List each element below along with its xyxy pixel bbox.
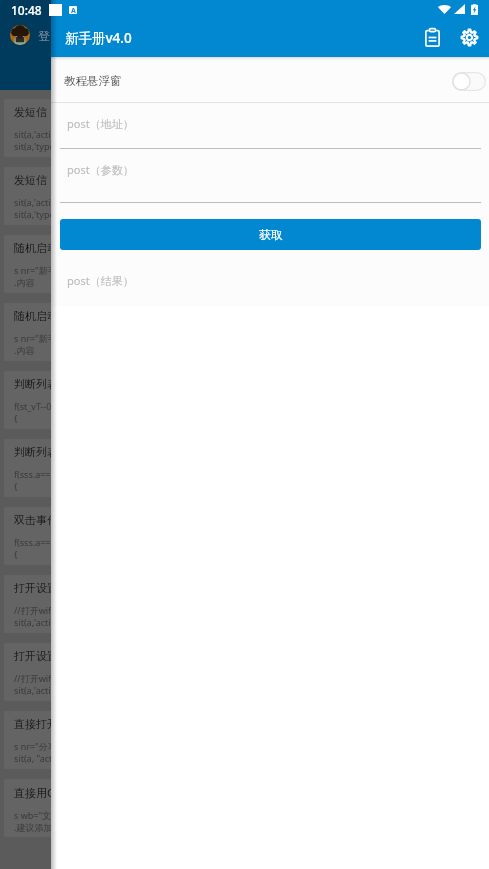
staticText: { xyxy=(14,480,18,492)
staticText: sit(a,'action' xyxy=(14,128,64,140)
staticText: sit(a,'type' xyxy=(14,208,57,220)
staticText: 直接打开分享 xyxy=(14,717,80,731)
button[interactable]: 打开设置页面 xyxy=(4,575,485,633)
button[interactable]: 直接打开分享 xyxy=(4,711,485,769)
button[interactable]: 双击事件演示 xyxy=(4,507,485,565)
staticText: 打开设置页面 xyxy=(14,581,80,595)
staticText: f(sss.a==n) xyxy=(14,536,59,548)
staticText: 双击事件演示 xyxy=(14,513,80,527)
staticText: sit(a,'type' xyxy=(14,140,57,152)
staticText: 新手册v4.0 xyxy=(65,29,132,47)
staticText: 登录 xyxy=(38,28,51,43)
button[interactable]: 判断列表内容 xyxy=(4,371,485,429)
staticText: post（参数） xyxy=(67,162,134,177)
button[interactable]: 随机启动应用 xyxy=(4,303,485,361)
staticText: sit(a,'action' xyxy=(14,196,64,208)
staticText: .建议添加( xyxy=(14,821,56,833)
staticText: 判断列表内容 xyxy=(14,377,80,391)
staticText: post（地址） xyxy=(67,116,134,131)
staticText: 发短信 xyxy=(14,173,47,187)
staticText: A xyxy=(71,6,76,14)
staticText: 打开设置页面 xyxy=(14,649,80,663)
staticText: .内容 xyxy=(14,276,35,288)
staticText: s wb="文件" xyxy=(14,809,64,821)
staticText: 发短信 xyxy=(14,105,47,119)
button[interactable]: 直接用QQ发送 xyxy=(4,779,485,837)
staticText: 随机启动应用 xyxy=(14,309,80,323)
button[interactable]: 发短信 xyxy=(4,99,485,157)
button[interactable]: post（参数） xyxy=(51,149,489,202)
staticText: //打开wifi xyxy=(14,672,54,684)
staticText: sit(a, "action xyxy=(14,752,66,764)
staticText: 判断列表内容 xyxy=(14,445,80,459)
staticText: 获取 xyxy=(259,227,283,242)
staticText: 10:48 xyxy=(11,2,42,18)
staticText: f(sss.a==n) xyxy=(14,468,59,480)
button[interactable]: 发短信 xyxy=(4,167,485,225)
staticText: s nr="分享" xyxy=(14,740,61,752)
staticText: 随机启动应用 xyxy=(14,241,80,255)
staticText: .内容 xyxy=(14,344,35,356)
button[interactable]: 获取 xyxy=(60,219,481,250)
button[interactable]: 随机启动应用 xyxy=(4,235,485,293)
button[interactable]: 教程悬浮窗 xyxy=(51,57,489,102)
staticText: { xyxy=(14,412,18,424)
staticText: sit(a,'action' xyxy=(14,616,64,628)
staticText: post（结果） xyxy=(67,273,134,288)
staticText: s nr="新手册" xyxy=(14,264,70,276)
staticText: { xyxy=(14,548,18,560)
staticText: 教程悬浮窗 xyxy=(64,74,122,88)
button[interactable]: Clipboard xyxy=(414,20,451,57)
staticText: sit(a,'action' xyxy=(14,684,64,696)
staticText: f(st_vT--0) xyxy=(14,400,55,412)
button[interactable]: Settings xyxy=(451,20,488,57)
button[interactable]: 判断列表内容 xyxy=(4,439,485,497)
staticText: 直接用QQ发送 xyxy=(14,785,87,800)
staticText: //打开wifi xyxy=(14,604,54,616)
button[interactable]: post（地址） xyxy=(51,103,489,148)
button[interactable]: 打开设置页面 xyxy=(4,643,485,701)
staticText: s nr="新手册" xyxy=(14,332,70,344)
